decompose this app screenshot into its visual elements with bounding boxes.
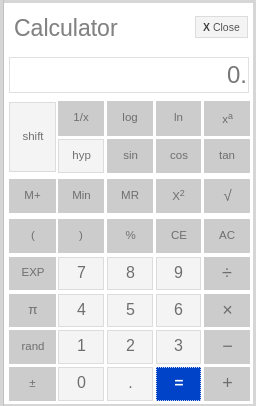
button[interactable]: × <box>204 294 250 327</box>
staticText: × <box>222 300 233 320</box>
button[interactable]: ) <box>58 219 104 253</box>
button[interactable]: . <box>107 367 153 401</box>
staticText: 7 <box>77 264 86 282</box>
button[interactable]: cos <box>156 139 201 173</box>
staticText: 0 <box>77 374 86 392</box>
staticText: tan <box>219 149 235 162</box>
button[interactable]: 7 <box>58 257 104 290</box>
staticText: AC <box>219 229 235 242</box>
staticText: 1 <box>77 337 86 355</box>
staticText: 1/x <box>73 111 89 124</box>
button[interactable]: = <box>156 367 201 401</box>
staticText: rand <box>21 340 45 353</box>
button[interactable]: Min <box>58 179 104 213</box>
staticText: ln <box>174 111 183 124</box>
staticText: MR <box>121 189 139 202</box>
button[interactable]: ÷ <box>204 257 250 290</box>
button[interactable]: X2 <box>156 179 201 213</box>
staticText: hyp <box>72 149 91 162</box>
staticText: X Close <box>203 21 240 33</box>
button[interactable]: ± <box>9 367 56 401</box>
button[interactable]: 4 <box>58 294 104 327</box>
button[interactable]: X Close <box>195 16 248 38</box>
button[interactable]: 9 <box>156 257 201 290</box>
button[interactable]: rand <box>9 330 56 364</box>
staticText: ( <box>31 229 35 242</box>
staticText: + <box>222 373 233 393</box>
button[interactable]: − <box>204 330 250 364</box>
staticText: % <box>125 229 136 242</box>
staticText: ÷ <box>222 263 232 283</box>
button[interactable]: MR <box>107 179 153 213</box>
staticText: ) <box>79 229 83 242</box>
button[interactable]: 6 <box>156 294 201 327</box>
staticText: CE <box>171 229 187 242</box>
staticText: 8 <box>126 264 135 282</box>
button[interactable]: 0 <box>58 367 104 401</box>
button[interactable]: + <box>204 367 250 401</box>
button[interactable]: M+ <box>9 179 56 213</box>
button[interactable]: ln <box>156 101 201 136</box>
staticText: shift <box>22 130 44 143</box>
staticText: 4 <box>77 301 86 319</box>
staticText: ± <box>29 377 36 390</box>
button[interactable]: 5 <box>107 294 153 327</box>
button[interactable]: 2 <box>107 330 153 364</box>
staticText: . <box>128 374 133 392</box>
button[interactable]: π <box>9 294 56 327</box>
button[interactable]: 8 <box>107 257 153 290</box>
button[interactable]: shift <box>9 102 56 172</box>
button[interactable]: EXP <box>9 257 56 290</box>
button[interactable]: 0. <box>9 57 249 93</box>
button[interactable]: AC <box>204 219 250 253</box>
staticText: M+ <box>24 189 41 202</box>
button[interactable]: √ <box>204 179 250 213</box>
staticText: π <box>28 302 38 317</box>
button[interactable]: 3 <box>156 330 201 364</box>
button[interactable]: sin <box>107 139 153 173</box>
staticText: Calculator <box>14 15 118 41</box>
staticText: √ <box>223 187 232 204</box>
staticText: log <box>122 111 138 124</box>
button[interactable]: 1/x <box>58 101 104 136</box>
staticText: EXP <box>21 266 45 279</box>
staticText: 5 <box>126 301 135 319</box>
button[interactable]: tan <box>204 139 250 173</box>
staticText: 0. <box>227 61 248 88</box>
button[interactable]: xa <box>204 101 250 136</box>
staticText: − <box>222 336 233 356</box>
staticText: xa <box>222 111 233 125</box>
staticText: X2 <box>172 188 185 202</box>
staticText: = <box>174 374 184 392</box>
button[interactable]: 1 <box>58 330 104 364</box>
button[interactable]: log <box>107 101 153 136</box>
button[interactable]: % <box>107 219 153 253</box>
staticText: 6 <box>174 301 183 319</box>
staticText: 9 <box>174 264 183 282</box>
staticText: cos <box>170 149 188 162</box>
staticText: 2 <box>126 337 135 355</box>
button[interactable]: ( <box>9 219 56 253</box>
staticText: sin <box>123 149 138 162</box>
button[interactable]: CE <box>156 219 201 253</box>
button[interactable]: hyp <box>58 139 104 173</box>
staticText: 3 <box>174 337 183 355</box>
staticText: Min <box>72 189 91 202</box>
